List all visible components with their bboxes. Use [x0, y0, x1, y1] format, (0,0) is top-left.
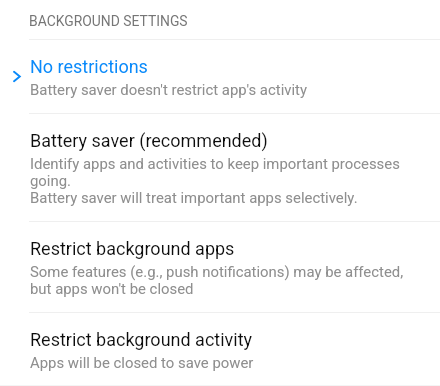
staticText: No restrictions — [30, 56, 148, 77]
button[interactable]: Restrict background apps — [0, 222, 440, 312]
staticText: Restrict background activity — [30, 329, 253, 350]
button[interactable]: Restrict background activity — [0, 313, 440, 386]
button[interactable]: Currently selected — [0, 40, 440, 113]
staticText: Battery saver (recommended) — [30, 130, 268, 151]
button[interactable]: Battery saver (recommended) — [0, 114, 440, 221]
staticText: Identify apps and activities to keep imp… — [30, 155, 420, 206]
other: Currently selected — [13, 71, 21, 82]
staticText: BACKGROUND SETTINGS — [29, 13, 188, 29]
staticText: Restrict background apps — [30, 238, 235, 259]
staticText: Some features (e.g., push notifications)… — [30, 263, 420, 297]
staticText: Apps will be closed to save power — [30, 354, 254, 371]
staticText: Battery saver doesn't restrict app's act… — [30, 81, 308, 98]
